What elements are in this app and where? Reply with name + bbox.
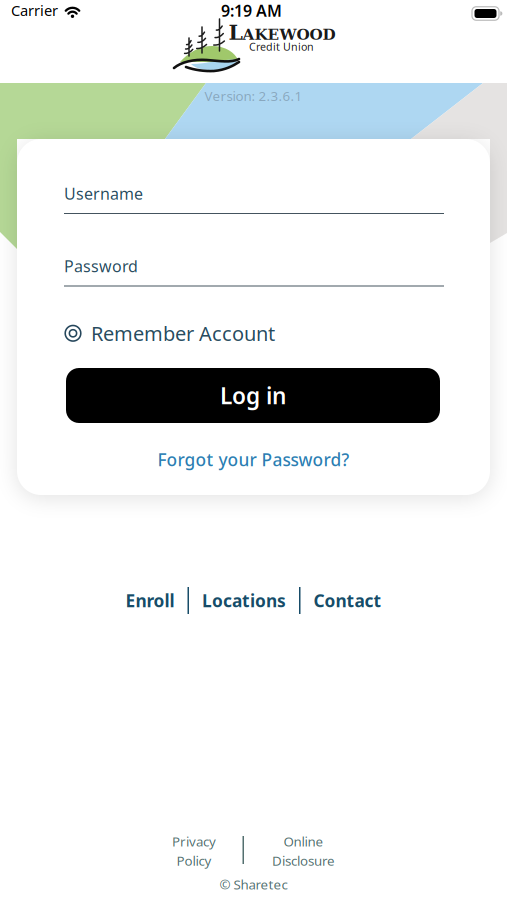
staticText: Privacy <box>172 832 216 850</box>
button[interactable]: Log in <box>66 368 440 423</box>
staticText: AKEWOOD <box>242 25 335 43</box>
staticText: Version: 2.3.6.1 <box>204 87 302 105</box>
staticText: Enroll <box>125 589 174 612</box>
button[interactable]: Contact <box>313 589 381 612</box>
staticText: Policy <box>176 852 211 869</box>
staticText: Forgot your Password? <box>157 448 349 471</box>
staticText: Locations <box>202 589 286 612</box>
button[interactable]: Enroll <box>125 589 174 612</box>
button[interactable]: Locations <box>202 589 286 612</box>
staticText: Online <box>283 832 323 850</box>
staticText: Credit Union <box>249 39 314 54</box>
staticText: 9:19 AM <box>221 0 282 21</box>
button[interactable]: Username <box>64 183 444 214</box>
staticText: Remember Account <box>91 320 275 347</box>
staticText: L <box>228 20 242 45</box>
button[interactable]: Password <box>64 255 444 286</box>
staticText: Username <box>64 183 143 204</box>
staticText: Contact <box>313 589 381 612</box>
button[interactable]: Privacy <box>172 832 216 869</box>
staticText: © Sharetec <box>219 875 287 893</box>
staticText: Disclosure <box>272 852 335 869</box>
staticText: Log in <box>220 380 286 410</box>
button[interactable]: Remember Account <box>64 320 275 347</box>
staticText: Password <box>64 255 138 277</box>
staticText: Carrier <box>11 0 58 20</box>
button[interactable]: Online <box>272 832 335 869</box>
button[interactable]: Forgot your Password? <box>157 448 349 471</box>
